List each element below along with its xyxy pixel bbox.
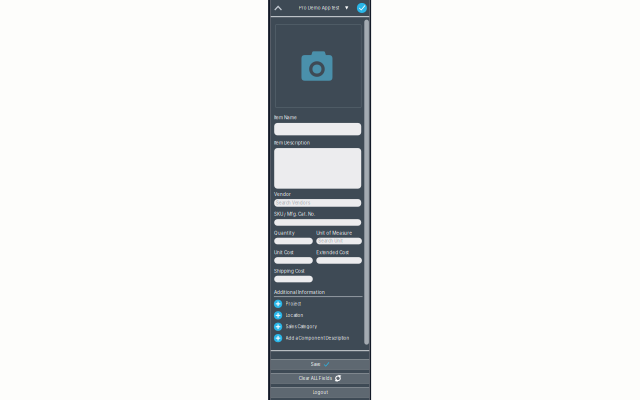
- staticText: Unit of Measure: [316, 230, 352, 236]
- button[interactable]: Pro Demo App test: [293, 1, 348, 15]
- button[interactable]: Location: [274, 311, 363, 320]
- staticText: SKU / Mfg. Cat. No.: [274, 211, 315, 217]
- button[interactable]: Sales Category: [274, 322, 363, 331]
- staticText: Location: [285, 313, 303, 318]
- staticText: Pro Demo App test: [299, 5, 339, 11]
- staticText: Vendor: [274, 192, 291, 197]
- staticText: Sales Category: [285, 324, 316, 329]
- button[interactable]: SKU / Mfg. Cat. No.: [274, 219, 361, 226]
- staticText: Item Description: [274, 140, 310, 146]
- button[interactable]: Save: [270, 359, 369, 369]
- button[interactable]: Search Vendors: [274, 199, 361, 207]
- button[interactable]: Add photo: [275, 24, 361, 107]
- button[interactable]: Item Name: [274, 123, 361, 135]
- button[interactable]: Project: [274, 299, 363, 308]
- staticText: Additional Information: [274, 289, 325, 295]
- staticText: Clear ALL Fields: [299, 376, 332, 381]
- staticText: Save: [311, 362, 321, 367]
- button[interactable]: Item Description: [274, 148, 361, 189]
- button[interactable]: Submit: [354, 0, 369, 16]
- button[interactable]: Quantity: [274, 238, 313, 244]
- button[interactable]: Logout: [270, 387, 369, 397]
- button[interactable]: Add a Component Description: [274, 333, 363, 343]
- button[interactable]: Search Unit: [316, 238, 362, 244]
- staticText: Extended Cost: [316, 250, 349, 255]
- staticText: Item Name: [274, 115, 297, 120]
- staticText: Quantity: [274, 230, 295, 236]
- button[interactable]: Clear ALL Fields: [270, 373, 369, 383]
- staticText: Shipping Cost: [274, 268, 305, 274]
- button[interactable]: Extended Cost: [316, 257, 362, 264]
- button[interactable]: Unit Cost: [274, 257, 313, 264]
- staticText: Search Vendors: [276, 200, 310, 205]
- staticText: Search Unit: [318, 238, 342, 244]
- staticText: Add a Component Description: [285, 335, 349, 341]
- staticText: Logout: [312, 390, 327, 395]
- staticText: Project: [285, 301, 300, 306]
- staticText: Unit Cost: [274, 250, 294, 255]
- button[interactable]: Shipping Cost: [274, 276, 313, 282]
- button[interactable]: Collapse: [270, 0, 287, 16]
